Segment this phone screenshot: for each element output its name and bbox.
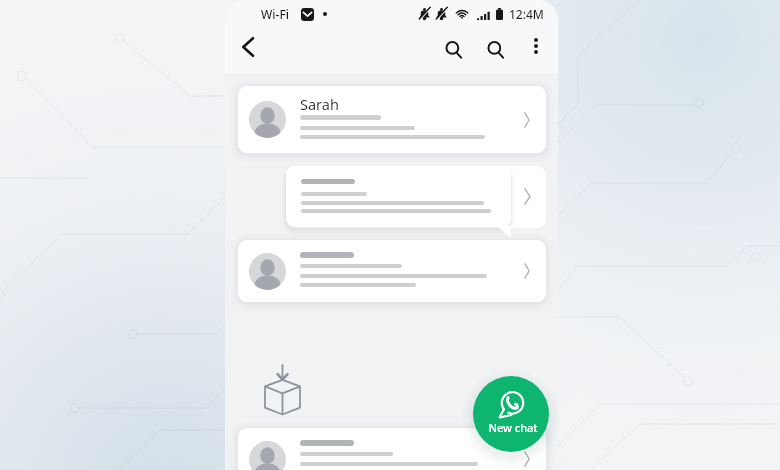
button[interactable]: New chat: [473, 376, 549, 452]
button[interactable]: [286, 166, 546, 228]
button[interactable]: [286, 166, 511, 240]
button[interactable]: Search chats: [477, 31, 514, 68]
staticText: Wi-Fi: [261, 6, 289, 22]
staticText: New chat: [488, 420, 538, 435]
button[interactable]: Archived: [264, 364, 301, 415]
button[interactable]: [238, 240, 546, 302]
staticText: Sarah: [300, 94, 339, 114]
button[interactable]: More options: [520, 30, 552, 62]
button[interactable]: Back: [231, 30, 265, 64]
button[interactable]: Sarah: [238, 86, 546, 153]
staticText: 12:4M: [509, 6, 544, 22]
button[interactable]: [238, 428, 546, 470]
button[interactable]: Search: [435, 31, 472, 68]
